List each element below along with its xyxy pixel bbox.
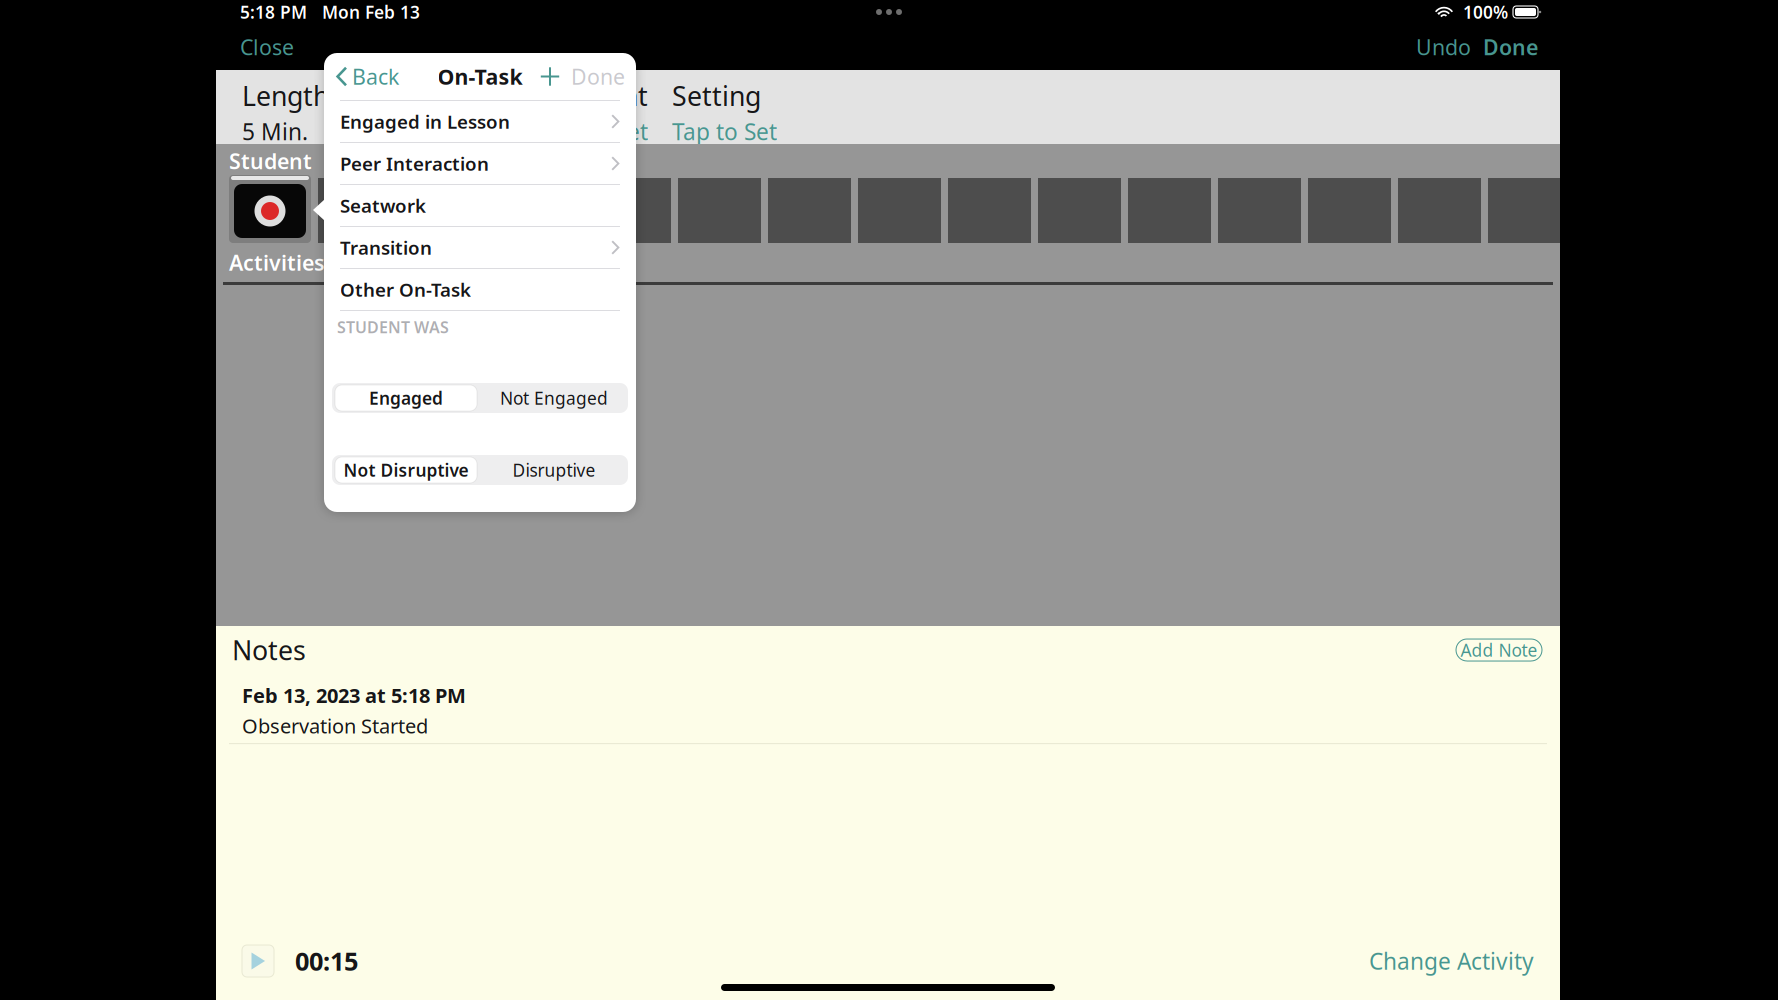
button[interactable]: Engaged <box>332 383 480 413</box>
staticText: Change Activity <box>1369 946 1534 976</box>
staticText: Transition <box>340 235 432 260</box>
staticText: Not Engaged <box>500 386 608 409</box>
button[interactable]: Engaged in Lesson <box>324 101 636 142</box>
staticText: 5 Min. <box>242 116 308 146</box>
staticText: Other On-Task <box>340 277 471 302</box>
button[interactable]: Undo <box>1416 24 1483 70</box>
button[interactable]: Done <box>1483 24 1560 70</box>
button[interactable]: Disruptive <box>480 455 628 485</box>
staticText: Length <box>242 78 329 113</box>
staticText: Mon Feb 13 <box>307 0 420 23</box>
staticText: Date <box>422 78 481 113</box>
staticText: Tap to Set <box>422 116 527 146</box>
button[interactable]: Add Note <box>1456 639 1542 661</box>
staticText: Engaged in Lesson <box>340 109 510 134</box>
staticText: Activities <box>229 248 325 277</box>
staticText: Not Disruptive <box>343 458 468 481</box>
staticText: 00:15 <box>274 944 358 978</box>
button[interactable]: Not Disruptive <box>332 455 480 485</box>
staticText: 100% <box>1453 0 1513 23</box>
button[interactable]: Tap to Set <box>543 116 648 146</box>
staticText: On-Task <box>437 62 522 91</box>
staticText: Setting <box>672 78 761 113</box>
button[interactable]: Play <box>242 945 274 977</box>
button[interactable]: Change Activity <box>1369 946 1534 976</box>
button[interactable]: Add <box>535 53 565 100</box>
staticText: STUDENT WAS <box>337 316 449 338</box>
staticText: 5:18 PM <box>240 0 307 23</box>
staticText: Tap to Set <box>672 116 777 146</box>
button[interactable]: Other On-Task <box>324 269 636 310</box>
staticText: Peer Interaction <box>340 151 489 176</box>
staticText: Engaged <box>369 386 443 409</box>
button[interactable]: Peer Interaction <box>324 143 636 184</box>
staticText: Done <box>571 62 625 91</box>
staticText: Feb 13, 2023 at 5:18 PM <box>242 682 466 709</box>
button[interactable]: Close <box>216 24 294 70</box>
staticText: Back <box>352 62 399 91</box>
staticText: Close <box>240 33 294 61</box>
staticText: Student <box>229 147 312 175</box>
staticText: Disruptive <box>512 458 595 481</box>
staticText: Seatwork <box>340 193 426 218</box>
button[interactable]: Transition <box>324 227 636 268</box>
staticText: Done <box>1483 33 1538 61</box>
staticText: Undo <box>1416 33 1471 61</box>
button[interactable]: Back <box>324 53 414 100</box>
button[interactable]: Not Engaged <box>480 383 628 413</box>
staticText: Tap to Set <box>543 116 648 146</box>
button[interactable]: Seatwork <box>324 185 636 226</box>
staticText: Add Note <box>1460 638 1537 661</box>
staticText: Notes <box>232 632 306 668</box>
button[interactable]: Done <box>567 53 629 100</box>
button[interactable]: Record <box>229 175 311 243</box>
staticText: Student <box>550 78 648 113</box>
button[interactable]: Tap to Set <box>672 116 777 146</box>
button[interactable]: Tap to Set <box>422 116 527 146</box>
staticText: Observation Started <box>242 713 428 739</box>
